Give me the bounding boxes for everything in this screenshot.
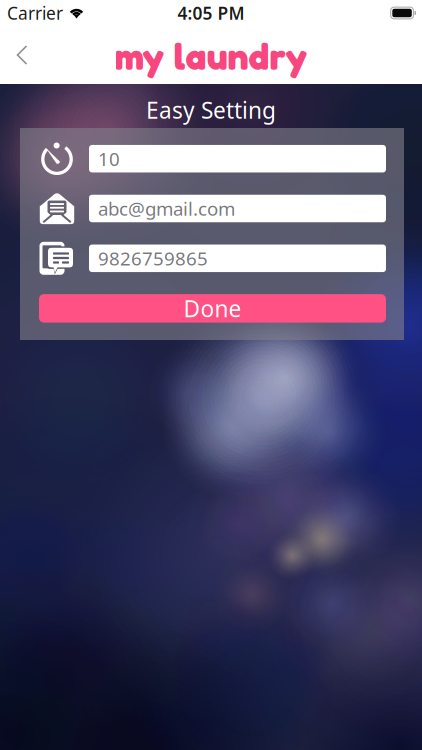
button[interactable]: Back bbox=[0, 33, 44, 77]
staticText: 9826759865 bbox=[98, 246, 208, 271]
staticText: Carrier bbox=[7, 1, 63, 24]
staticText: Done bbox=[183, 293, 241, 323]
button[interactable]: Done bbox=[39, 294, 386, 323]
staticText: my laundry bbox=[114, 33, 307, 79]
staticText: abc@gmail.com bbox=[98, 196, 235, 221]
staticText: 10 bbox=[98, 146, 120, 171]
staticText: 4:05 PM bbox=[177, 1, 244, 24]
staticText: Easy Setting bbox=[146, 95, 276, 125]
